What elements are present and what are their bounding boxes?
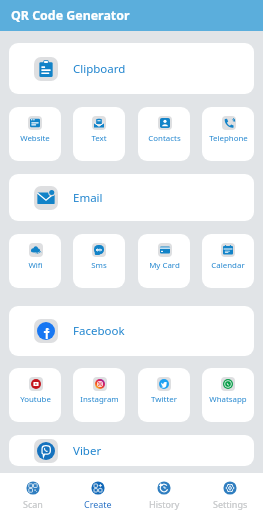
other: Contacts (160, 118, 170, 128)
button[interactable]: Sms (73, 234, 125, 288)
button[interactable]: Youtube (9, 368, 61, 422)
other: Instagram (95, 379, 105, 389)
other: Website (30, 118, 40, 128)
button[interactable]: Clipboard (9, 43, 254, 94)
button[interactable]: Settings (197, 475, 263, 510)
other: History (157, 481, 171, 495)
other: Settings (223, 481, 237, 495)
button[interactable]: Email (9, 174, 254, 221)
staticText: Website (20, 133, 50, 144)
other: Calendar (223, 245, 233, 255)
other: Wifi (31, 245, 41, 255)
staticText: My Card (149, 260, 180, 271)
other: Twitter (159, 379, 169, 389)
other: Telephone (224, 118, 234, 128)
button[interactable]: Create (65, 475, 131, 510)
button[interactable]: Scan (0, 475, 65, 510)
staticText: History (149, 498, 180, 510)
staticText: Scan (23, 498, 43, 510)
staticText: Youtube (20, 394, 51, 405)
staticText: Calendar (211, 260, 245, 271)
button[interactable]: Website (9, 107, 61, 161)
staticText: Instagram (80, 394, 119, 405)
staticText: Clipboard (73, 61, 126, 77)
other: Create (91, 481, 105, 495)
other: My Card (160, 245, 170, 255)
other: Whatsapp (223, 379, 233, 389)
staticText: Viber (73, 443, 102, 459)
staticText: Text (91, 133, 107, 144)
other: Facebook (37, 322, 55, 340)
other: Youtube (31, 379, 41, 389)
staticText: Whatsapp (209, 394, 247, 405)
staticText: Wifi (28, 260, 43, 271)
staticText: Create (84, 498, 112, 510)
other: Clipboard (37, 60, 55, 78)
staticText: Telephone (209, 133, 248, 144)
button[interactable]: Calendar (202, 234, 254, 288)
button[interactable]: Text (73, 107, 125, 161)
other: Scan (26, 481, 40, 495)
other: Viber (37, 442, 55, 460)
staticText: Twitter (151, 394, 177, 405)
button[interactable]: Twitter (138, 368, 190, 422)
staticText: Contacts (148, 133, 181, 144)
button[interactable]: Viber (9, 435, 254, 466)
button[interactable]: Whatsapp (202, 368, 254, 422)
staticText: Settings (213, 498, 248, 510)
staticText: QR Code Generator (11, 7, 130, 24)
button[interactable]: Contacts (138, 107, 190, 161)
other: Text (94, 118, 104, 128)
button[interactable]: Instagram (73, 368, 125, 422)
staticText: Facebook (73, 323, 125, 339)
button[interactable]: History (131, 475, 197, 510)
button[interactable]: Facebook (9, 306, 254, 356)
other: Email (37, 189, 55, 207)
staticText: Sms (91, 260, 107, 271)
button[interactable]: Wifi (9, 234, 61, 288)
button[interactable]: Telephone (202, 107, 254, 161)
button[interactable]: My Card (138, 234, 190, 288)
other: Sms (94, 245, 104, 255)
staticText: Email (73, 190, 103, 206)
